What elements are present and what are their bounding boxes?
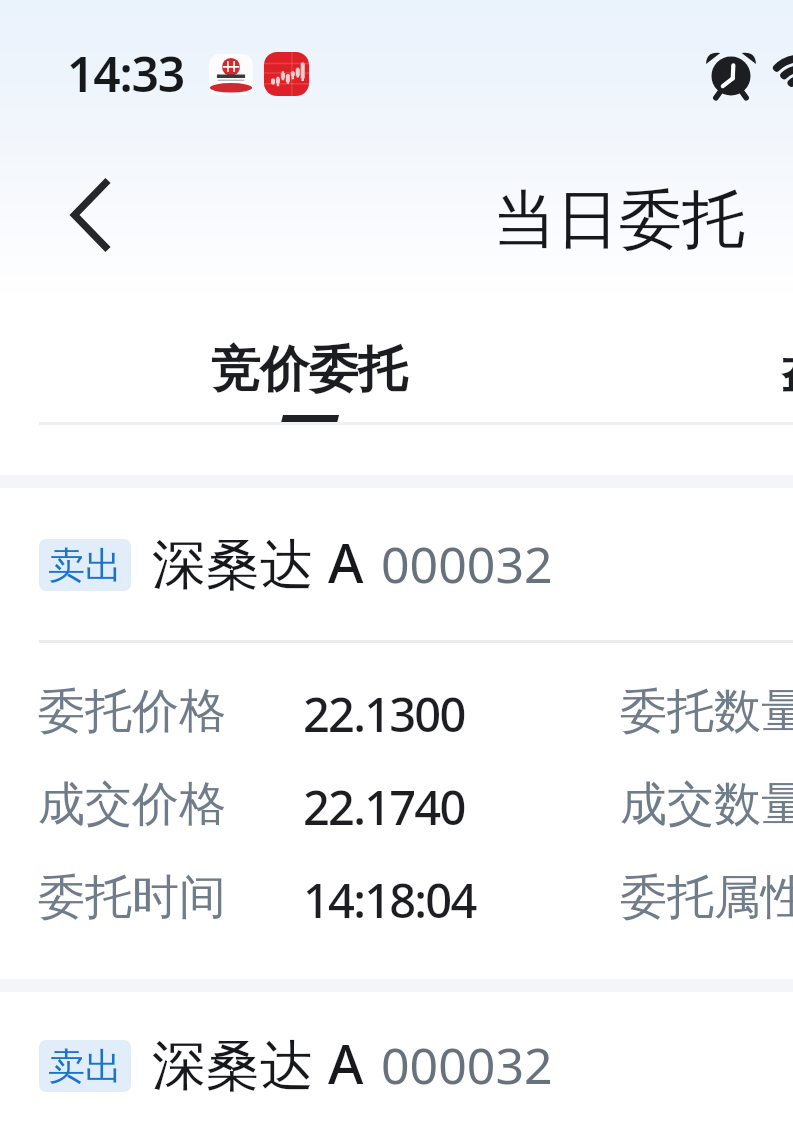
button[interactable]: 竞价委托: [115, 310, 505, 422]
button[interactable]: 卖出: [0, 488, 793, 979]
staticText: 卖出: [48, 542, 122, 589]
staticText: 深桑达 A: [152, 1026, 364, 1100]
other: Wi-Fi: [776, 46, 793, 96]
button[interactable]: 卖出: [0, 992, 793, 1123]
staticText: 成交数量: [620, 775, 793, 834]
staticText: 000032: [381, 530, 553, 598]
staticText: 委托价格: [38, 682, 226, 741]
staticText: 委托属性: [620, 868, 793, 927]
staticText: 委托数量: [620, 682, 793, 741]
staticText: 竞价委托: [211, 339, 407, 401]
staticText: 委托时间: [38, 868, 226, 927]
staticText: 000032: [381, 1031, 553, 1099]
staticText: 卖出: [48, 1043, 122, 1090]
staticText: 盘后定价委托: [781, 339, 793, 401]
button[interactable]: Back: [40, 170, 136, 260]
other: Alarm: [706, 49, 756, 99]
staticText: 14:18:04: [303, 868, 476, 932]
staticText: 14:33: [67, 41, 185, 106]
staticText: 22.1740: [303, 775, 465, 839]
staticText: 成交价格: [38, 775, 226, 834]
staticText: 22.1300: [303, 682, 465, 746]
staticText: 深桑达 A: [152, 525, 364, 599]
staticText: 当日委托: [493, 180, 745, 259]
button[interactable]: 盘后定价委托: [685, 310, 793, 422]
